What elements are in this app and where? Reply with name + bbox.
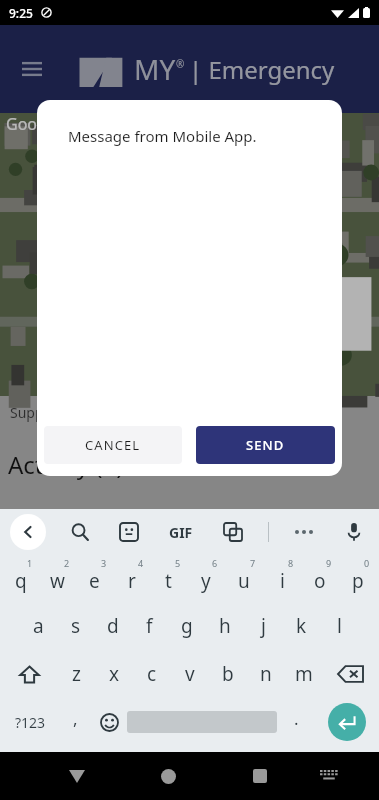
staticText: 9: [326, 557, 332, 569]
staticText: z: [72, 661, 81, 687]
staticText: 7: [250, 557, 256, 569]
staticText: h: [219, 613, 231, 639]
button[interactable]: Switch keyboard: [306, 752, 352, 800]
button[interactable]: b: [209, 650, 247, 698]
button[interactable]: Search: [65, 517, 95, 547]
staticText: 9:25: [9, 5, 33, 21]
staticText: 3: [101, 557, 107, 569]
button[interactable]: Voice input: [339, 517, 369, 547]
staticText: ,: [73, 707, 78, 730]
button[interactable]: s: [57, 602, 94, 650]
staticText: Supporting text: [10, 403, 113, 422]
staticText: MY: [134, 50, 176, 88]
button[interactable]: Emoji: [91, 698, 127, 746]
staticText: r: [128, 568, 136, 594]
staticText: k: [296, 613, 307, 639]
button[interactable]: More options: [289, 517, 319, 547]
button[interactable]: .: [277, 698, 316, 746]
button[interactable]: Enter: [328, 703, 366, 741]
button[interactable]: f: [131, 602, 168, 650]
button[interactable]: u: [225, 554, 263, 602]
button[interactable]: v: [171, 650, 209, 698]
staticText: l: [337, 613, 342, 639]
staticText: 4: [138, 557, 144, 569]
button[interactable]: q: [2, 554, 39, 602]
staticText: j: [261, 613, 266, 639]
button[interactable]: ?123: [2, 698, 59, 746]
staticText: f: [146, 613, 153, 639]
staticText: x: [109, 661, 120, 687]
button[interactable]: g: [168, 602, 206, 650]
button[interactable]: m: [285, 650, 323, 698]
staticText: ?123: [15, 713, 46, 732]
staticText: | Emergency: [189, 53, 335, 86]
staticText: i: [280, 568, 285, 594]
staticText: g: [181, 613, 193, 639]
button[interactable]: CANCEL: [44, 426, 182, 464]
staticText: 8: [288, 557, 294, 569]
button[interactable]: r: [113, 554, 150, 602]
staticText: e: [89, 568, 100, 594]
staticText: u: [238, 568, 250, 594]
button[interactable]: y: [187, 554, 225, 602]
button[interactable]: Home: [145, 752, 191, 800]
staticText: y: [201, 568, 211, 594]
staticText: t: [165, 568, 172, 594]
button[interactable]: p: [339, 554, 377, 602]
button[interactable]: t: [150, 554, 187, 602]
staticText: GIF: [169, 523, 193, 542]
staticText: d: [107, 613, 119, 639]
button[interactable]: Stickers: [114, 517, 144, 547]
staticText: Activity (2): [8, 448, 124, 481]
button[interactable]: k: [282, 602, 320, 650]
button[interactable]: ,: [59, 698, 91, 746]
button[interactable]: SEND: [196, 426, 335, 464]
staticText: c: [147, 661, 157, 687]
staticText: o: [314, 568, 326, 594]
button[interactable]: c: [133, 650, 171, 698]
staticText: 2: [64, 557, 70, 569]
button[interactable]: Back: [54, 752, 99, 800]
button[interactable]: GIF: [164, 515, 198, 549]
staticText: Message from Mobile App.: [68, 126, 257, 146]
button[interactable]: x: [95, 650, 133, 698]
button[interactable]: Backspace: [323, 650, 377, 698]
staticText: v: [185, 661, 195, 687]
staticText: ®: [176, 57, 185, 71]
button[interactable]: e: [76, 554, 113, 602]
button[interactable]: i: [263, 554, 301, 602]
staticText: q: [15, 568, 27, 594]
staticText: 1: [27, 557, 33, 569]
staticText: n: [260, 661, 272, 687]
button[interactable]: z: [57, 650, 95, 698]
button[interactable]: l: [320, 602, 358, 650]
staticText: .: [294, 707, 299, 730]
staticText: p: [352, 568, 364, 594]
button[interactable]: w: [39, 554, 76, 602]
button[interactable]: Recent apps: [237, 752, 283, 800]
staticText: a: [33, 613, 44, 639]
staticText: w: [50, 568, 65, 594]
button[interactable]: Shift: [2, 650, 57, 698]
staticText: 0: [364, 557, 370, 569]
button[interactable]: j: [244, 602, 282, 650]
button[interactable]: Open navigation menu: [14, 51, 50, 87]
staticText: 5: [175, 557, 181, 569]
staticText: CANCEL: [85, 436, 141, 454]
staticText: SEND: [246, 436, 285, 454]
staticText: Google: [6, 113, 61, 135]
button[interactable]: h: [206, 602, 244, 650]
button[interactable]: n: [247, 650, 285, 698]
button[interactable]: o: [301, 554, 339, 602]
button[interactable]: Back: [10, 514, 46, 550]
staticText: b: [222, 661, 234, 687]
staticText: s: [71, 613, 81, 639]
button[interactable]: Translate: [218, 517, 248, 547]
staticText: m: [295, 661, 313, 687]
button[interactable]: a: [20, 602, 57, 650]
staticText: 6: [212, 557, 218, 569]
button[interactable]: d: [94, 602, 131, 650]
